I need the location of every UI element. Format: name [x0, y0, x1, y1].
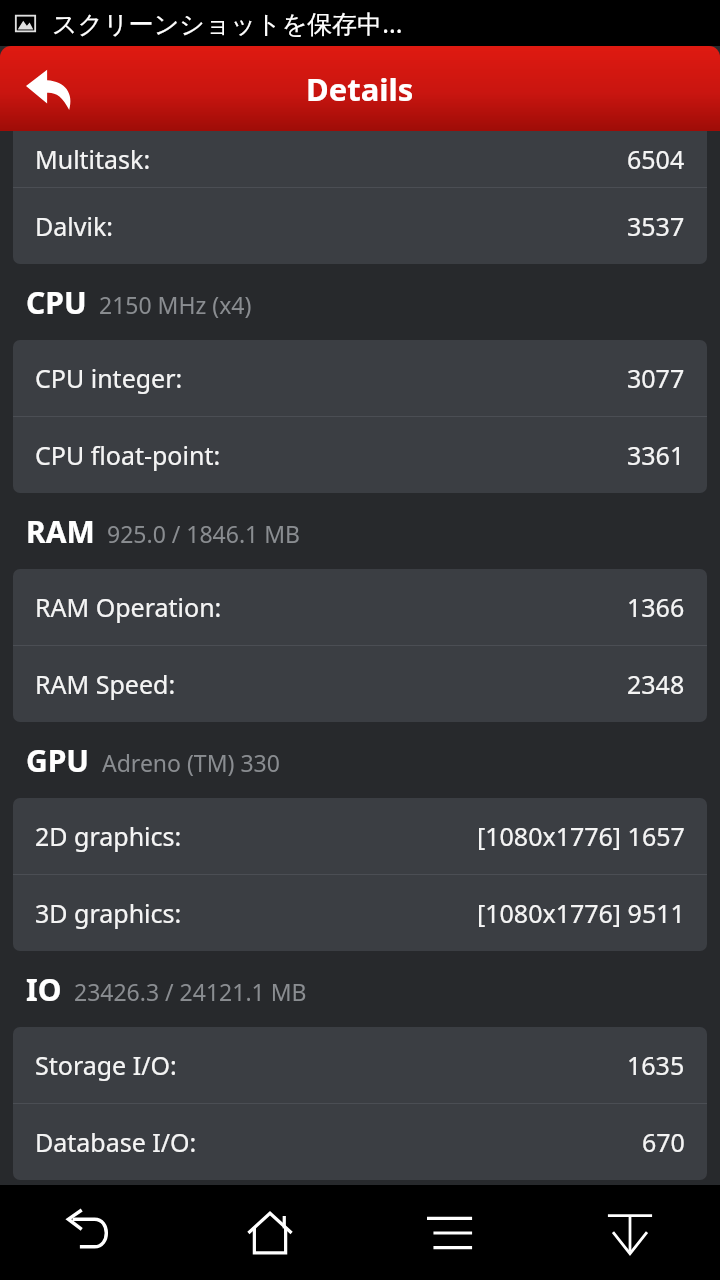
button[interactable]: Back [45, 1188, 135, 1278]
staticText: Adreno (TM) 330 [102, 747, 280, 778]
staticText: CPU float-point: [35, 438, 221, 472]
button[interactable]: Back [16, 55, 84, 123]
staticText: 3361 [627, 438, 685, 472]
staticText: 1635 [627, 1048, 685, 1082]
staticText: 2D graphics: [35, 819, 182, 853]
staticText: 23426.3 / 24121.1 MB [74, 976, 307, 1007]
staticText: GPU [26, 740, 90, 781]
staticText: Multitask: [35, 142, 151, 176]
staticText: スクリーンショットを保存中... [52, 6, 403, 40]
staticText: 6504 [627, 142, 685, 176]
button[interactable]: 3D graphics: [13, 875, 707, 951]
staticText: Details [306, 68, 414, 110]
staticText: 1366 [627, 590, 685, 624]
staticText: 3537 [627, 209, 685, 243]
button[interactable]: CPU float-point: [13, 417, 707, 493]
staticText: 3077 [627, 361, 685, 395]
button[interactable]: 2D graphics: [13, 798, 707, 874]
staticText: CPU [26, 282, 87, 323]
staticText: [1080x1776] 1657 [477, 819, 685, 853]
staticText: [1080x1776] 9511 [477, 896, 685, 930]
staticText: 670 [642, 1125, 685, 1159]
button[interactable]: Storage I/O: [13, 1027, 707, 1103]
staticText: RAM Speed: [35, 667, 176, 701]
staticText: 3D graphics: [35, 896, 182, 930]
button[interactable]: Database I/O: [13, 1104, 707, 1180]
staticText: CPU integer: [35, 361, 183, 395]
button[interactable]: RAM Operation: [13, 569, 707, 645]
staticText: Dalvik: [35, 209, 113, 243]
staticText: 2348 [627, 667, 685, 701]
staticText: IO [26, 969, 62, 1010]
staticText: RAM [26, 511, 95, 552]
button[interactable]: Menu [405, 1188, 495, 1278]
button[interactable]: CPU integer: [13, 340, 707, 416]
staticText: Storage I/O: [35, 1048, 177, 1082]
button[interactable]: RAM Speed: [13, 646, 707, 722]
staticText: 2150 MHz (x4) [99, 289, 252, 320]
staticText: RAM Operation: [35, 590, 222, 624]
button[interactable]: Home [225, 1188, 315, 1278]
button[interactable]: Dalvik: [13, 188, 707, 264]
staticText: 925.0 / 1846.1 MB [107, 518, 301, 549]
button[interactable]: Hide keyboard [585, 1188, 675, 1278]
button[interactable]: Multitask: [13, 131, 707, 187]
staticText: Database I/O: [35, 1125, 197, 1159]
